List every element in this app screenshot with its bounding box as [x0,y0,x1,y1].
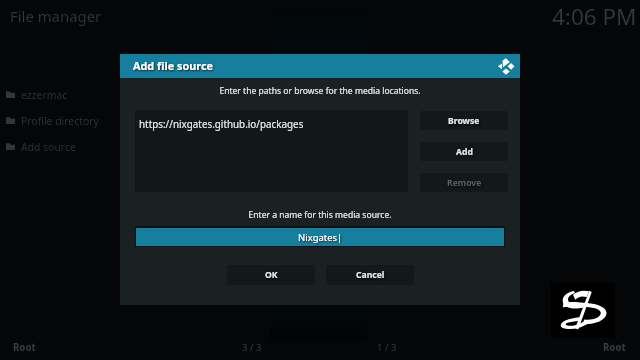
button[interactable]: Cancel [326,265,414,285]
button[interactable]: Nixgates| [136,228,504,246]
button[interactable]: https://nixgates.github.io/packages [135,110,408,192]
button[interactable]: Browse [420,111,508,130]
other: Logo [551,283,615,338]
staticText: https://nixgates.github.io/packages [139,117,304,130]
button[interactable]: Profile directory [0,108,120,133]
staticText: Nixgates| [298,231,343,244]
other: Kodi [497,57,515,75]
staticText: ezzermac [21,88,68,102]
button[interactable]: Add source [0,134,120,159]
staticText: 1 / 3 [377,341,397,354]
staticText: Root [13,341,36,354]
staticText: Cancel [356,269,385,281]
staticText: Browse [448,115,480,127]
staticText: Add file source [133,58,213,73]
staticText: Add source [21,140,76,154]
staticText: 4:06 PM [552,1,637,32]
staticText: OK [265,269,278,281]
staticText: Remove [447,177,482,189]
button[interactable]: ezzermac [0,82,120,107]
staticText: 3 / 3 [242,341,262,354]
staticText: Add [456,146,473,158]
staticText: Root [603,341,626,354]
staticText: Enter a name for this media source. [120,209,520,221]
staticText: Profile directory [21,114,99,128]
button[interactable]: Add [420,142,508,161]
staticText: File manager [10,6,102,26]
button[interactable]: Remove [420,173,508,192]
button[interactable]: OK [227,265,315,285]
staticText: Enter the paths or browse for the media … [120,85,520,97]
